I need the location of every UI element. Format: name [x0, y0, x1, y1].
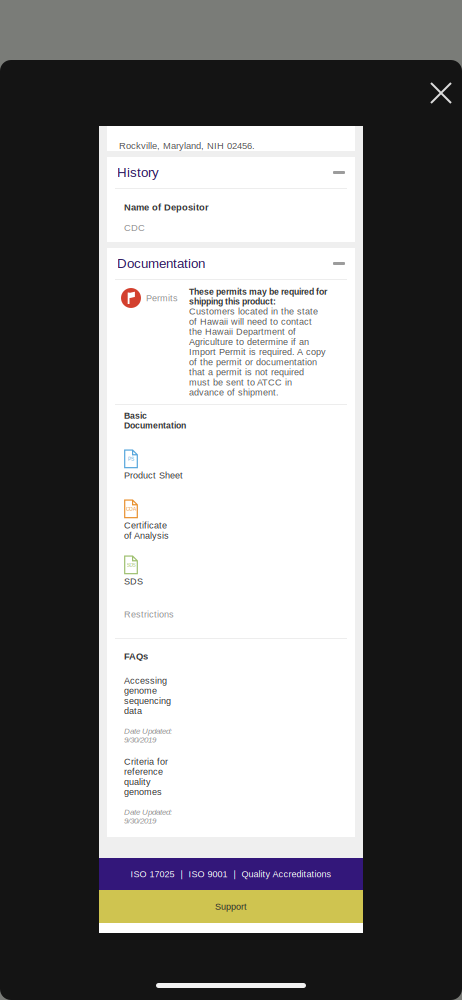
- staticText: These permits may be required for shippi…: [189, 287, 327, 306]
- staticText: FAQs: [124, 651, 148, 661]
- button[interactable]: ISO 17025: [130, 869, 174, 879]
- staticText: ISO 17025: [130, 869, 174, 879]
- staticText: Product Sheet: [124, 470, 183, 480]
- staticText: Customers located in the state of Hawaii…: [189, 306, 326, 398]
- staticText: Documentation: [117, 256, 205, 271]
- staticText: Accessing genome sequencing data: [124, 675, 171, 716]
- staticText: Date Updated: 9/30/2019: [124, 807, 172, 825]
- staticText: SDS: [126, 562, 135, 568]
- staticText: | ISO 9001 | Quality Accreditations: [174, 869, 331, 879]
- staticText: Date Updated: 9/30/2019: [124, 726, 172, 744]
- staticText: Permits: [146, 293, 178, 303]
- staticText: PS: [128, 456, 134, 462]
- staticText: Restrictions: [124, 609, 174, 619]
- button[interactable]: COA: [124, 499, 184, 539]
- staticText: Criteria for reference quality genomes: [124, 756, 168, 797]
- staticText: SDS: [124, 576, 143, 586]
- staticText: History: [117, 165, 159, 180]
- staticText: Rockville, Maryland, NIH 02456.: [119, 141, 255, 151]
- button[interactable]: SDS: [124, 555, 184, 585]
- staticText: Basic Documentation: [124, 411, 186, 430]
- staticText: CDC: [124, 222, 145, 233]
- button[interactable]: Support: [99, 890, 363, 923]
- button[interactable]: Criteria for reference quality genomes: [124, 756, 172, 797]
- button[interactable]: PS: [124, 449, 184, 479]
- staticText: Name of Depositor: [124, 202, 209, 212]
- staticText: Certificate of Analysis: [124, 520, 178, 541]
- button[interactable]: Close: [420, 72, 462, 114]
- button[interactable]: History: [107, 157, 355, 188]
- button[interactable]: Documentation: [107, 248, 355, 279]
- staticText: COA: [126, 506, 136, 512]
- staticText: Support: [215, 901, 247, 911]
- button[interactable]: Accessing genome sequencing data: [124, 675, 172, 716]
